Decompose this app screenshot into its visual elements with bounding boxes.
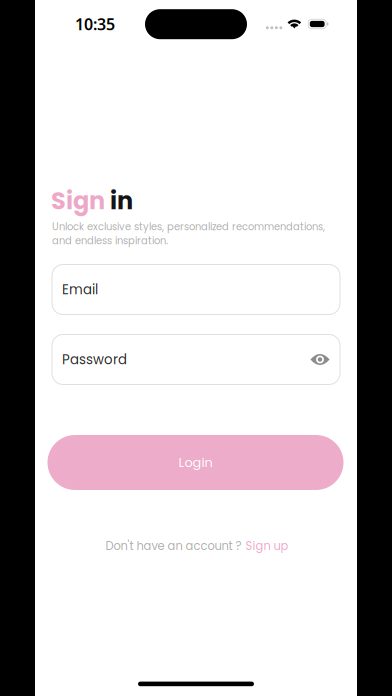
staticText: Sign up: [245, 538, 288, 554]
staticText: in: [110, 184, 133, 218]
button[interactable]: Show password: [310, 352, 330, 366]
button[interactable]: Don't have an account ?: [36, 536, 358, 556]
staticText: Sign: [51, 184, 105, 218]
staticText: Password: [62, 350, 127, 369]
button[interactable]: Login: [47, 435, 343, 490]
staticText: Login: [178, 453, 212, 471]
staticText: Unlock exclusive styles, personalized re…: [52, 220, 325, 248]
staticText: Don't have an account ?: [105, 538, 241, 554]
staticText: Email: [62, 280, 98, 299]
staticText: 10:35: [75, 13, 115, 35]
